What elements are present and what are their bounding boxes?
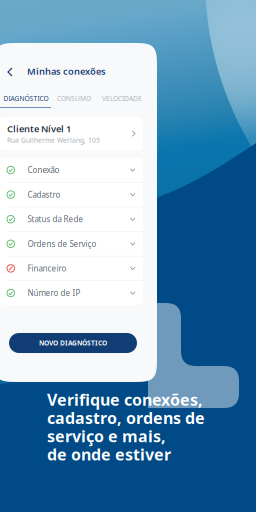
button[interactable]: DIAGNÓSTICO (0, 94, 52, 103)
button[interactable]: Ordens de Serviço (0, 232, 143, 256)
staticText: serviço e mais, (47, 425, 166, 447)
staticText: Status da Rede (27, 214, 83, 224)
button[interactable]: Conexão (0, 158, 143, 182)
button[interactable]: Cadastro (0, 183, 143, 207)
staticText: DIAGNÓSTICO (3, 94, 48, 103)
staticText: Número de IP (27, 288, 80, 298)
staticText: cadastro, ordens de (47, 407, 205, 428)
button[interactable]: Número de IP (0, 281, 143, 305)
staticText: Conexão (27, 165, 59, 175)
staticText: NOVO DIAGNÓSTICO (39, 339, 107, 347)
button[interactable]: Financeiro (0, 256, 143, 280)
staticText: de onde estiver (47, 444, 171, 465)
staticText: Ordens de Serviço (27, 238, 96, 249)
button[interactable]: Back (2, 62, 18, 82)
staticText: CONSUMO (57, 94, 91, 103)
staticText: Financeiro (27, 263, 66, 274)
button[interactable]: VELOCIDADE (96, 94, 148, 103)
button[interactable]: NOVO DIAGNÓSTICO (9, 333, 137, 353)
staticText: Verifique conexões, (47, 389, 203, 410)
staticText: VELOCIDADE (102, 94, 142, 103)
staticText: Rua Guilherme Werlang, 105 (7, 136, 100, 145)
staticText: Cliente Nível 1 (7, 122, 71, 135)
staticText: Cadastro (27, 189, 60, 200)
staticText: Minhas conexões (27, 65, 106, 77)
button[interactable]: Status da Rede (0, 207, 143, 231)
button[interactable]: CONSUMO (52, 94, 96, 103)
button[interactable]: Cliente Nível 1 (0, 117, 143, 150)
